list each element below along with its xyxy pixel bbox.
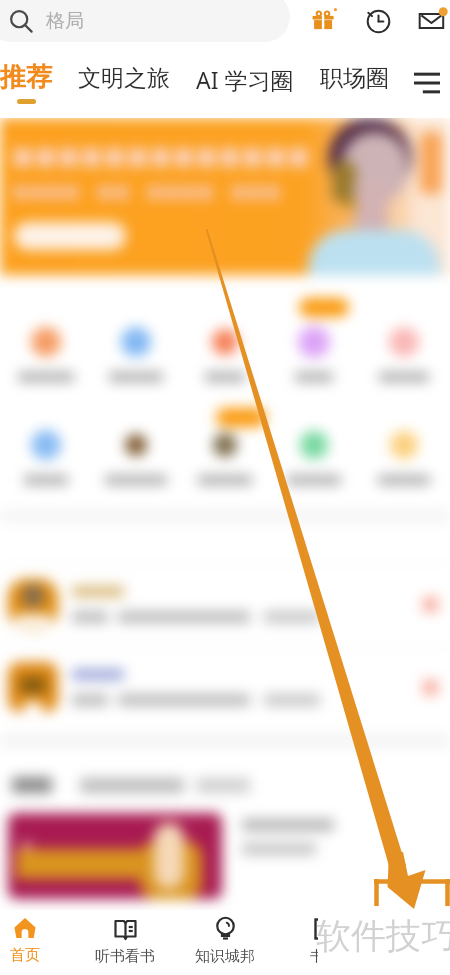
button[interactable] <box>182 414 268 485</box>
staticText: 书架 <box>310 947 340 966</box>
button[interactable] <box>271 414 357 485</box>
staticText: 听书看书 <box>95 947 155 966</box>
button[interactable] <box>8 813 334 899</box>
button[interactable]: Gifts <box>308 5 340 37</box>
staticText: 文明之旅 <box>78 64 170 93</box>
button[interactable] <box>182 311 268 382</box>
button[interactable] <box>0 659 450 715</box>
button[interactable]: Messages <box>416 5 448 37</box>
staticText: 知识城邦 <box>195 947 255 966</box>
button[interactable]: All channels <box>406 62 448 104</box>
button[interactable] <box>3 414 89 485</box>
button[interactable]: History <box>362 5 394 37</box>
button[interactable]: 书架 <box>275 910 375 966</box>
button[interactable] <box>0 118 450 275</box>
button[interactable]: 职场圈 <box>307 56 402 114</box>
button[interactable] <box>3 311 89 382</box>
button[interactable]: 听书看书 <box>75 910 175 966</box>
button[interactable] <box>361 414 447 485</box>
button[interactable]: 文明之旅 <box>65 56 183 114</box>
staticText: 推荐 <box>0 61 52 94</box>
button[interactable]: 知识城邦 <box>175 910 275 966</box>
button[interactable] <box>361 311 447 382</box>
button[interactable] <box>0 576 450 632</box>
button[interactable]: AI 学习圈 <box>183 56 307 114</box>
button[interactable]: 格局 <box>0 0 290 42</box>
staticText: 格局 <box>46 9 84 33</box>
staticText: 职场圈 <box>320 64 389 93</box>
staticText: AI 学习圈 <box>196 64 294 95</box>
button[interactable] <box>271 311 357 382</box>
button[interactable]: 首页 <box>0 910 75 965</box>
button[interactable] <box>93 414 179 485</box>
staticText: 软件技巧 <box>316 914 450 958</box>
button[interactable] <box>93 311 179 382</box>
staticText: 首页 <box>10 946 40 965</box>
button[interactable]: 推荐 <box>0 56 65 114</box>
